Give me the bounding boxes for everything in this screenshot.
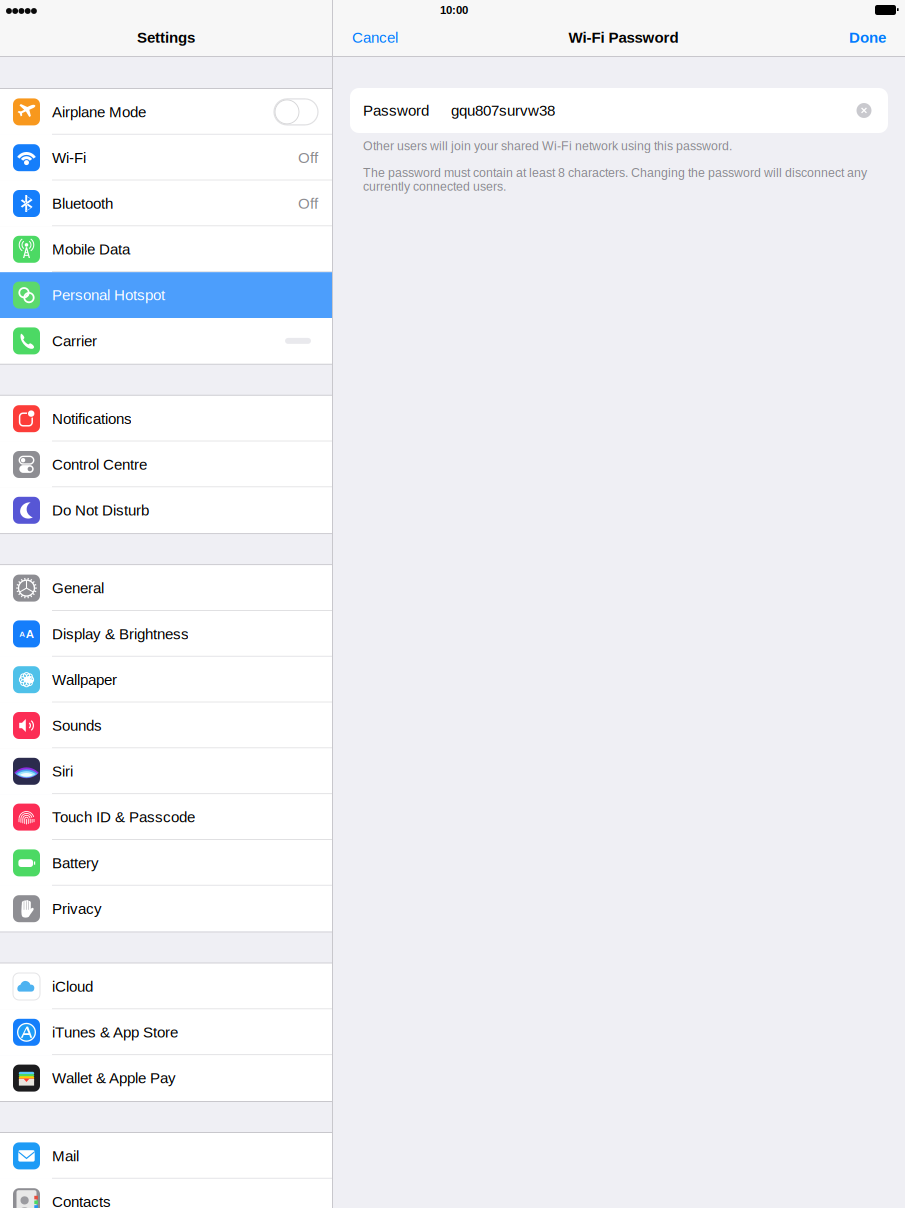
staticText: Other users will join your shared Wi-Fi …	[363, 139, 732, 153]
staticText: Personal Hotspot	[52, 287, 165, 303]
button[interactable]: Do Not Disturb	[0, 487, 332, 533]
staticText: Wi-Fi	[52, 149, 86, 166]
staticText: Privacy	[52, 900, 102, 917]
staticText: Carrier	[52, 332, 97, 349]
staticText: iCloud	[52, 978, 93, 995]
staticText: Notifications	[52, 410, 132, 427]
button[interactable]: General	[0, 565, 332, 611]
staticText: The password must contain at least 8 cha…	[363, 166, 867, 193]
staticText: Settings	[137, 29, 195, 46]
button[interactable]: Cancel	[352, 29, 398, 46]
staticText: Cancel	[352, 29, 398, 46]
button[interactable]: Carrier	[0, 318, 332, 364]
staticText: Mobile Data	[52, 241, 130, 258]
button[interactable]: A	[0, 611, 332, 657]
button[interactable]: Bluetooth	[0, 181, 332, 226]
staticText: 10:00	[440, 4, 468, 16]
staticText: Battery	[52, 854, 99, 871]
staticText: Wallpaper	[52, 671, 117, 688]
staticText: Touch ID & Passcode	[52, 809, 195, 825]
staticText: Off	[298, 195, 318, 212]
button[interactable]: Airplane Mode	[0, 89, 332, 135]
staticText: Airplane Mode	[52, 103, 146, 120]
button[interactable]: Notifications	[0, 396, 332, 442]
button[interactable]: Mail	[0, 1133, 332, 1179]
button[interactable]: Privacy	[0, 886, 332, 932]
button[interactable]: Wi-Fi	[0, 135, 332, 181]
button[interactable]: iTunes & App Store	[0, 1009, 332, 1055]
staticText: Sounds	[52, 717, 102, 734]
staticText: Bluetooth	[52, 195, 113, 212]
staticText: Do Not Disturb	[52, 502, 149, 519]
staticText: Wallet & Apple Pay	[52, 1070, 176, 1086]
button[interactable]: Wallet & Apple Pay	[0, 1055, 332, 1101]
button[interactable]: iCloud	[0, 964, 332, 1009]
staticText: Control Centre	[52, 456, 147, 473]
staticText: Display & Brightness	[52, 625, 189, 642]
staticText: gqu807survw38	[451, 102, 555, 119]
staticText: Siri	[52, 763, 73, 780]
button[interactable]: Mobile Data	[0, 226, 332, 272]
button[interactable]: Done	[849, 29, 886, 46]
button[interactable]: Sounds	[0, 703, 332, 748]
staticText: A	[19, 629, 25, 638]
staticText: General	[52, 580, 104, 596]
button[interactable]: Wallpaper	[0, 657, 332, 703]
staticText: Done	[849, 29, 886, 46]
button[interactable]: Touch ID & Passcode	[0, 794, 332, 840]
staticText: Contacts	[52, 1193, 111, 1208]
button[interactable]: Personal Hotspot	[0, 272, 332, 318]
button[interactable]: Siri	[0, 748, 332, 794]
button[interactable]: Contacts	[0, 1179, 332, 1208]
button[interactable]: Clear text	[852, 98, 876, 122]
staticText: Off	[298, 149, 318, 166]
staticText: Password	[363, 102, 429, 119]
button[interactable]: Battery	[0, 840, 332, 886]
staticText: Mail	[52, 1147, 79, 1164]
staticText: Wi-Fi Password	[568, 29, 678, 46]
button[interactable]: Control Centre	[0, 442, 332, 487]
staticText: iTunes & App Store	[52, 1024, 178, 1041]
staticText: A	[26, 627, 34, 640]
